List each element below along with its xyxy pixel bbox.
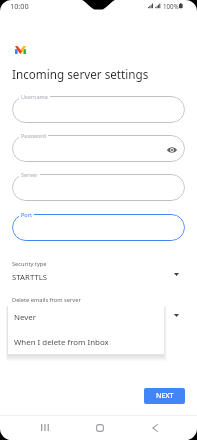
staticText: Server xyxy=(21,171,38,178)
button[interactable]: Back xyxy=(143,416,166,439)
staticText: Incoming server settings xyxy=(12,66,149,82)
staticText: STARTTLS xyxy=(12,272,48,283)
staticText: NEXT xyxy=(156,391,174,401)
button[interactable] xyxy=(12,214,185,241)
button[interactable] xyxy=(12,96,185,123)
button[interactable]: Recent apps xyxy=(33,416,56,439)
staticText: 100% xyxy=(163,2,179,10)
button[interactable]: Security type xyxy=(0,257,197,287)
button[interactable]: Delete emails from server xyxy=(0,293,197,323)
staticText: 10:00 xyxy=(10,1,29,11)
staticText: Never xyxy=(14,312,37,323)
button[interactable]: When I delete from Inbox xyxy=(8,330,164,355)
button[interactable]: Home xyxy=(88,416,111,439)
button[interactable]: Show password xyxy=(12,135,185,162)
button[interactable]: Never xyxy=(8,305,164,330)
other: Show password xyxy=(167,147,177,153)
button[interactable] xyxy=(12,174,185,201)
staticText: Password xyxy=(21,132,46,139)
staticText: Username xyxy=(21,93,48,100)
staticText: When I delete from Inbox xyxy=(14,337,109,348)
staticText: Port xyxy=(21,211,32,218)
button[interactable]: NEXT xyxy=(144,388,185,404)
staticText: Delete emails from server xyxy=(12,296,81,304)
staticText: Security type xyxy=(12,260,47,268)
